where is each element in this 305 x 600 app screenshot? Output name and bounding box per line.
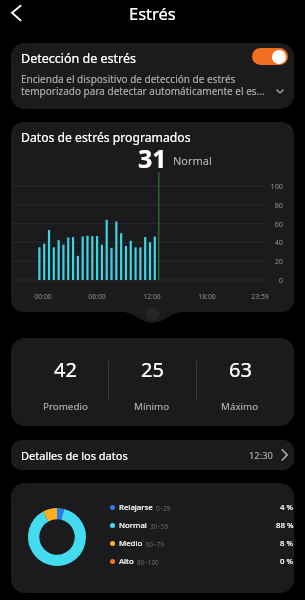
staticText: 60 [257, 219, 283, 229]
staticText: Mínimo [134, 400, 170, 413]
button[interactable]: Normal [107, 516, 294, 534]
staticText: 06:00 [81, 292, 113, 301]
staticText: 80 [257, 200, 283, 210]
staticText: 18:00 [191, 292, 223, 301]
staticText: Relajarse [119, 502, 153, 513]
staticText: 0 % [280, 556, 294, 567]
staticText: Datos de estrés programados [21, 129, 191, 146]
staticText: Detalles de los datos [21, 448, 128, 463]
staticText: 40 [257, 237, 283, 247]
staticText: 25 [141, 356, 164, 383]
button[interactable]: Stress detection toggle [252, 48, 288, 65]
staticText: 0~29 [156, 504, 280, 513]
staticText: 4 % [280, 502, 294, 513]
staticText: Promedio [43, 400, 88, 413]
staticText: 80~100 [137, 558, 280, 567]
staticText: Medio [119, 538, 143, 549]
button[interactable]: Alto [107, 552, 294, 570]
staticText: 12:30 [249, 449, 273, 462]
staticText: Normal [173, 153, 212, 168]
staticText: 42 [54, 356, 77, 383]
staticText: Estrés [129, 2, 176, 24]
button[interactable]: Medio [107, 534, 294, 552]
staticText: Alto [119, 556, 134, 567]
button[interactable]: 25 [108, 338, 196, 426]
button[interactable]: Detección de estrés [11, 43, 294, 109]
staticText: Encienda el dispositivo de detección de … [21, 72, 279, 98]
staticText: 00:00 [27, 292, 59, 301]
staticText: Detección de estrés [21, 50, 136, 67]
button[interactable]: Back [1, 0, 27, 26]
staticText: 60~79 [146, 540, 280, 549]
button[interactable]: 42 [21, 338, 109, 426]
staticText: 12:00 [136, 292, 168, 301]
staticText: 8 % [280, 538, 294, 549]
staticText: 63 [229, 356, 252, 383]
button[interactable]: Relajarse [107, 498, 294, 516]
staticText: 100 [257, 181, 283, 191]
staticText: 88 % [276, 520, 294, 531]
button[interactable]: Detalles de los datos [11, 440, 294, 470]
staticText: 0 [257, 275, 283, 285]
staticText: Normal [119, 520, 147, 531]
button[interactable]: 63 [196, 338, 284, 426]
staticText: 30~59 [150, 522, 276, 531]
staticText: Máximo [221, 400, 259, 413]
staticText: 23:59 [244, 292, 276, 301]
staticText: 31 [138, 141, 167, 175]
staticText: 20 [257, 256, 283, 266]
